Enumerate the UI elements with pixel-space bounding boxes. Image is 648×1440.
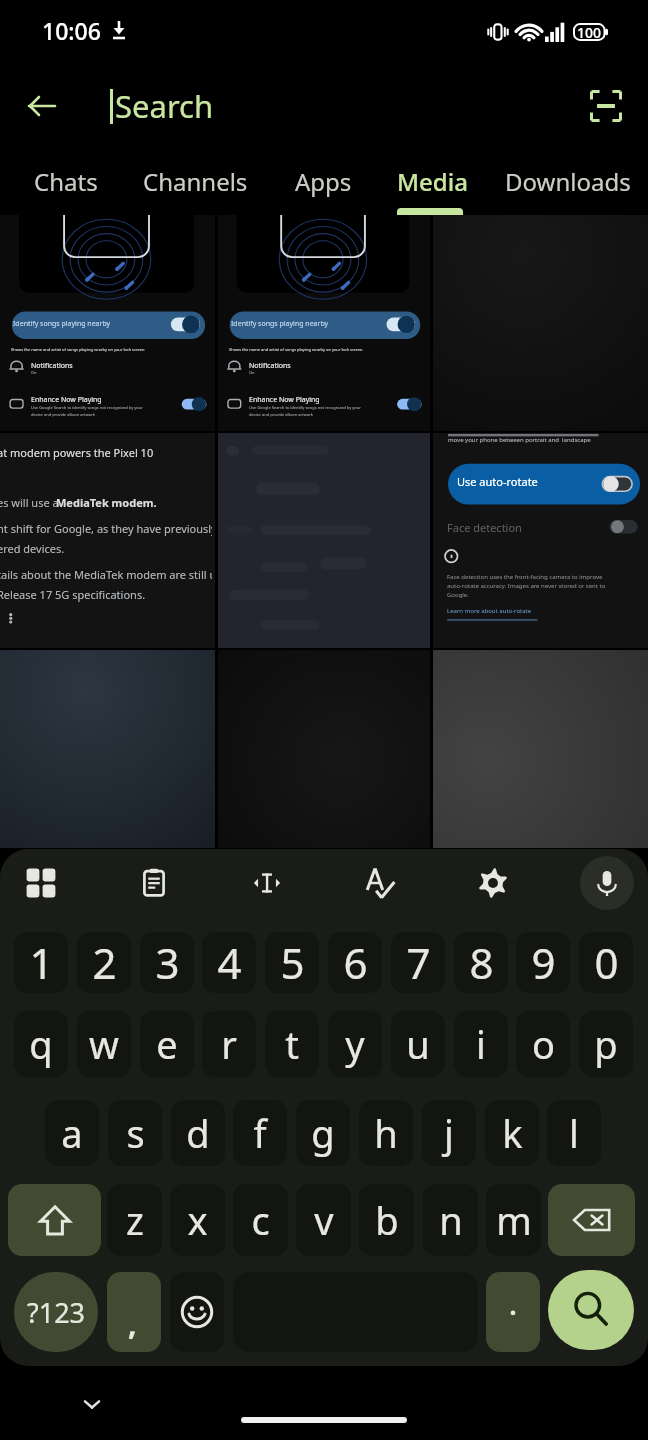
staticText: 3 [155,934,180,991]
staticText: Chats [34,165,98,198]
staticText: ?123 [27,1294,86,1331]
button[interactable]: Media item [433,650,648,848]
staticText: Release 17 5G specifications. [0,587,146,602]
button[interactable]: Apps [266,150,380,215]
button[interactable]: 9 [516,932,570,993]
button[interactable]: 3 [140,932,194,993]
staticText: e [156,1018,178,1070]
staticText: Face detection [447,520,522,535]
staticText: x [187,1194,208,1246]
button[interactable]: f [233,1100,287,1166]
button[interactable] [486,1272,540,1352]
button[interactable]: 2 [77,932,131,993]
button[interactable]: s [108,1100,162,1166]
staticText: nt shift for Google, as they have previo… [0,521,212,536]
button[interactable]: h [359,1100,413,1166]
staticText: 1 [29,934,54,991]
button[interactable]: i [454,1011,508,1077]
staticText: o [532,1018,555,1070]
button[interactable]: c [233,1184,288,1256]
staticText: On [31,370,37,375]
button[interactable]: k [485,1100,539,1166]
button[interactable]: g [296,1100,350,1166]
staticText: 7 [406,934,431,991]
button[interactable]: Apps [15,857,67,909]
button[interactable]: 7 [391,932,445,993]
button[interactable]: Media item [433,433,648,648]
button[interactable]: u [391,1011,445,1077]
button[interactable]: Settings [467,857,519,909]
staticText: 8 [469,934,494,991]
button[interactable]: Media [380,150,484,215]
button[interactable]: 8 [454,932,508,993]
button[interactable]: Voice input [580,856,634,910]
button[interactable]: Media item [218,215,430,431]
staticText: Use Google Search to identify songs not … [249,405,361,410]
staticText: Search [115,85,214,127]
button[interactable]: m [486,1184,541,1256]
button[interactable]: d [171,1100,225,1166]
button[interactable]: t [265,1011,319,1077]
button[interactable]: Chats [8,150,124,215]
button[interactable]: q [14,1011,68,1077]
button[interactable]: Back [16,80,68,132]
button[interactable]: a [45,1100,99,1166]
button[interactable]: Media item [0,433,215,648]
staticText: Channels [143,165,248,198]
button[interactable]: Search [548,1270,634,1350]
staticText: move your phone between portrait and lan… [448,436,591,444]
button[interactable]: Downloads [488,150,648,215]
staticText: 2 [92,934,117,991]
button[interactable]: n [423,1184,478,1256]
button[interactable]: b [359,1184,414,1256]
button[interactable]: Media item [0,650,215,848]
staticText: Enhance Now Playing [31,395,102,405]
button[interactable]: Shift [8,1184,101,1256]
button[interactable]: l [547,1100,601,1166]
button[interactable]: 5 [265,932,319,993]
button[interactable]: Scan code [580,80,632,132]
button[interactable]: Emoji [170,1272,224,1352]
button[interactable]: 1 [14,932,68,993]
button[interactable]: 4 [202,932,256,993]
button[interactable]: , [107,1272,161,1352]
staticText: Face detection uses the front-facing cam… [447,573,603,581]
button[interactable]: y [328,1011,382,1077]
button[interactable]: r [202,1011,256,1077]
button[interactable]: Spell check [354,857,406,909]
button[interactable]: ?123 [14,1272,98,1352]
staticText: Apps [295,165,352,198]
button[interactable]: Hide keyboard [70,1382,114,1426]
button[interactable]: Text editing [241,857,293,909]
button[interactable]: j [422,1100,476,1166]
staticText: Shows the name and artist of songs playi… [11,347,145,352]
button[interactable]: v [296,1184,351,1256]
staticText: tails about the MediaTek modem are still… [0,567,212,582]
button[interactable]: x [170,1184,225,1256]
staticText: 6 [343,934,368,991]
staticText: 0 [594,934,619,991]
staticText: m [496,1194,532,1246]
button[interactable]: w [77,1011,131,1077]
button[interactable]: Backspace [548,1184,635,1256]
button[interactable]: 0 [579,932,633,993]
staticText: u [406,1018,430,1070]
staticText: Media [397,165,468,198]
staticText: l [569,1107,579,1159]
button[interactable]: p [579,1011,633,1077]
button[interactable]: Clipboard [128,857,180,909]
button[interactable]: Media item [0,215,215,431]
button[interactable]: z [107,1184,162,1256]
staticText: auto-rotate accuracy. Images are never s… [447,582,606,590]
button[interactable]: e [140,1011,194,1077]
staticText: Downloads [505,165,631,198]
staticText: Enhance Now Playing [249,395,320,405]
button[interactable]: Channels [124,150,266,215]
button[interactable]: 6 [328,932,382,993]
staticText: j [444,1107,454,1159]
button[interactable]: o [516,1011,570,1077]
